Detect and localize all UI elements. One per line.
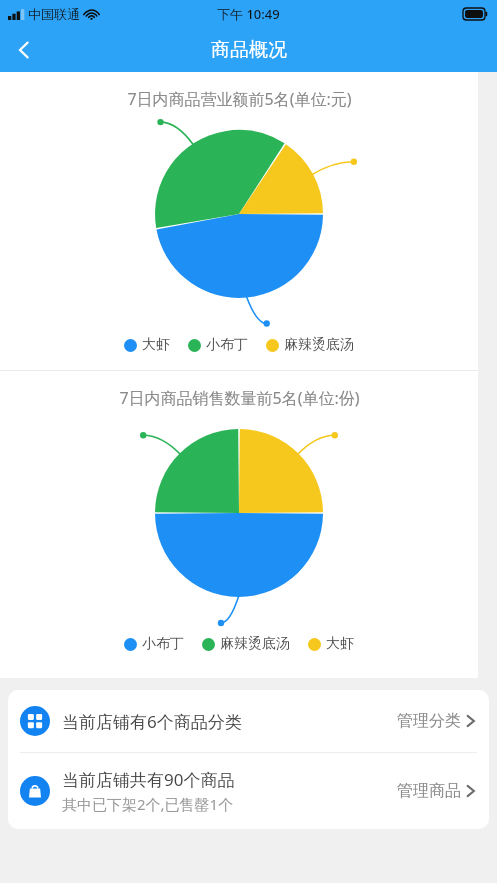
staticText: 当前店铺有6个商品分类 — [62, 710, 242, 733]
button[interactable]: 当前店铺有6个商品分类 — [8, 690, 489, 752]
staticText: 麻辣烫底汤 — [284, 336, 354, 354]
staticText: 小布丁 — [142, 635, 184, 653]
staticText: 7日内商品销售数量前5名(单位:份) — [119, 387, 360, 409]
staticText: 管理分类 — [397, 711, 461, 731]
staticText: 麻辣烫底汤 — [220, 635, 290, 653]
button[interactable]: 当前店铺共有90个商品 — [8, 753, 489, 829]
staticText: 管理商品 — [397, 781, 461, 801]
staticText: 小布丁 — [206, 336, 248, 354]
staticText: 下午 10:49 — [217, 5, 280, 23]
button[interactable]: 返回 — [0, 28, 48, 72]
staticText: 大虾 — [142, 336, 170, 354]
staticText: 商品概况 — [211, 38, 287, 62]
staticText: 其中已下架2个,已售罄1个 — [62, 794, 234, 814]
staticText: 大虾 — [326, 635, 354, 653]
staticText: 7日内商品营业额前5名(单位:元) — [127, 88, 352, 110]
staticText: 中国联通 — [28, 6, 80, 22]
staticText: 当前店铺共有90个商品 — [62, 768, 235, 791]
